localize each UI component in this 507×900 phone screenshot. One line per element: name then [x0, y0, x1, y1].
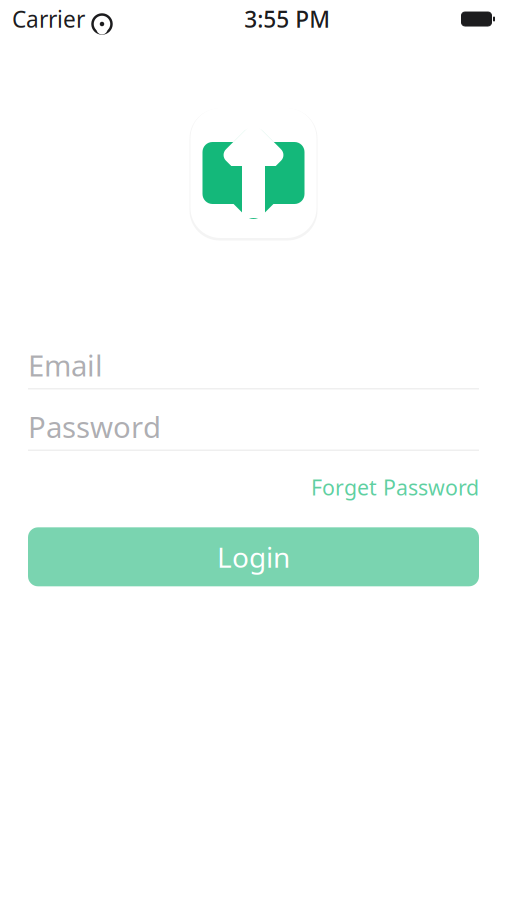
button[interactable]: Login [28, 527, 479, 586]
staticText: Forget Password [311, 473, 479, 501]
staticText: Login [217, 538, 290, 575]
staticText: Carrier [12, 4, 85, 34]
staticText: Password [28, 407, 161, 446]
staticText: 3:55 PM [244, 4, 330, 34]
staticText: Email [28, 345, 103, 384]
button[interactable]: Forget Password [311, 473, 479, 501]
